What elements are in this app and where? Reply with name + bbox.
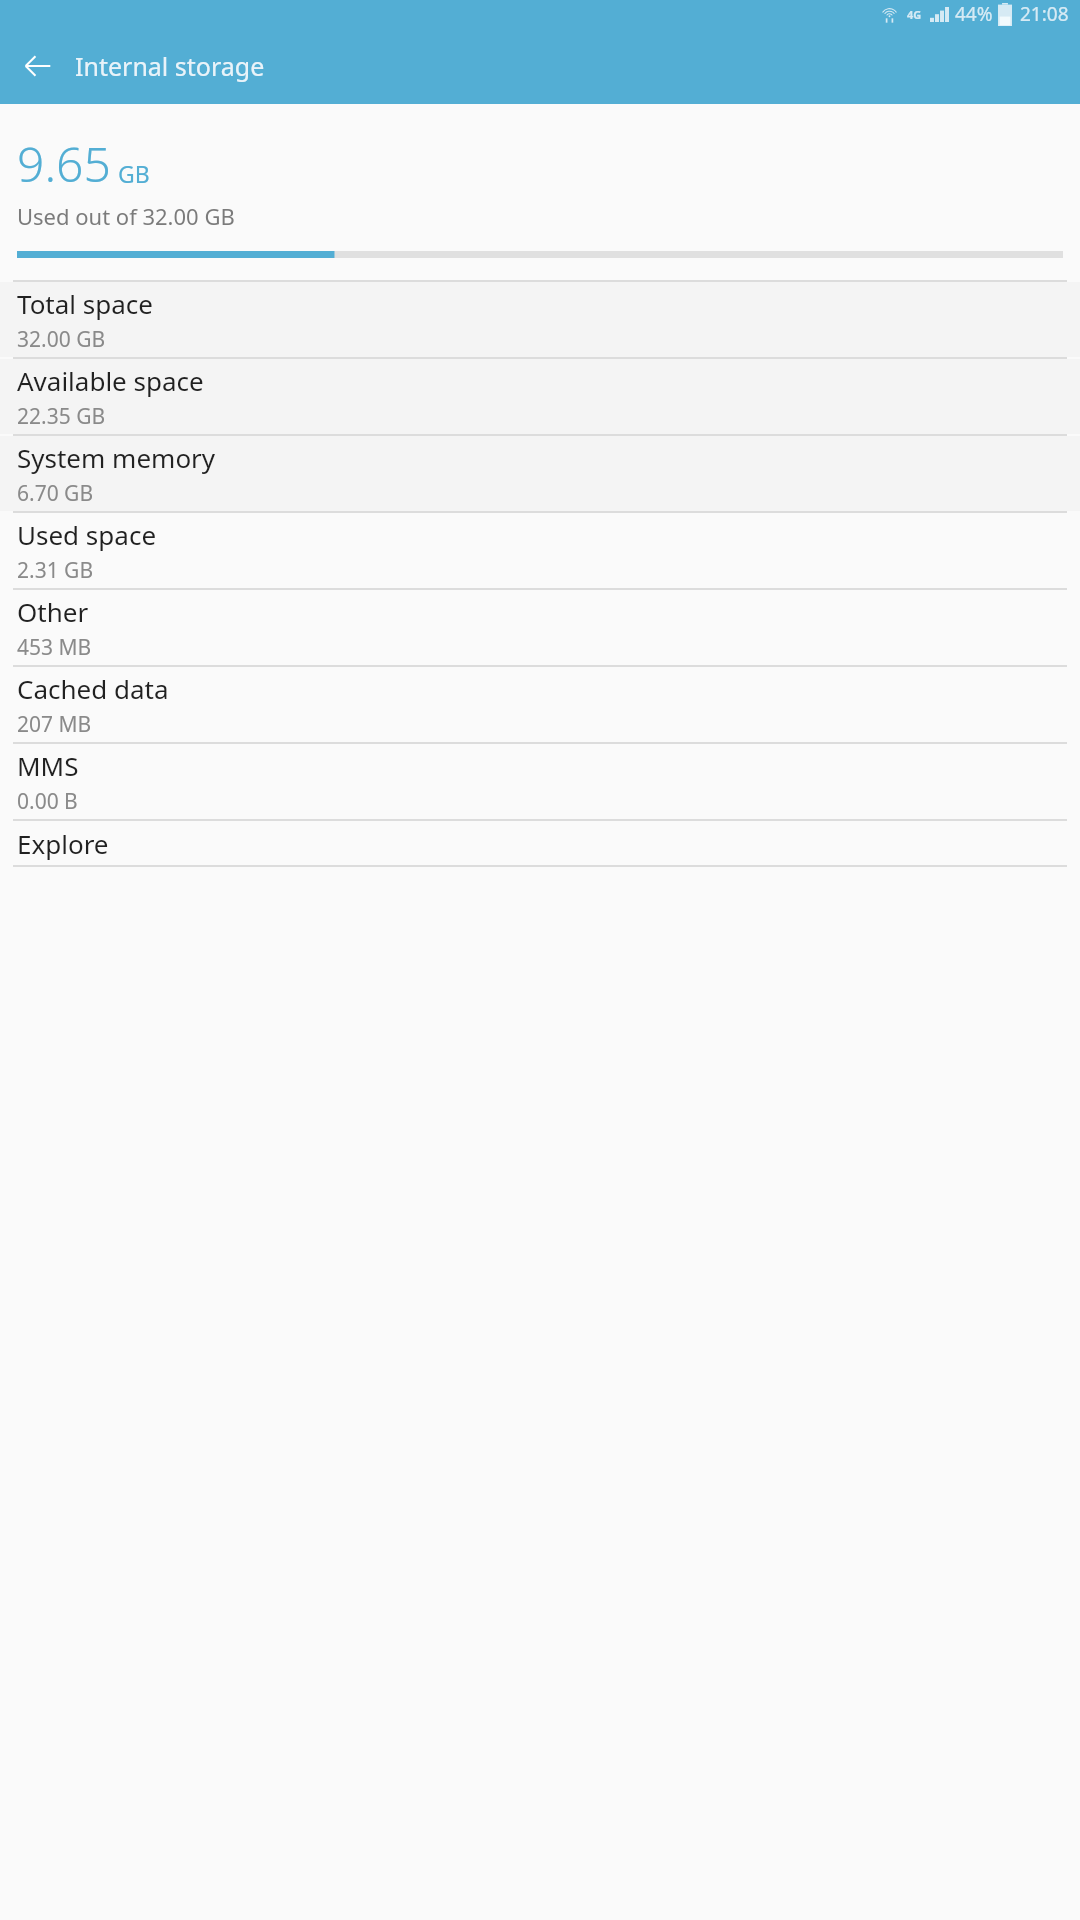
staticText: GB [118,158,150,189]
staticText: Available space [17,363,204,398]
staticText: 4G [907,7,922,22]
staticText: 2.31 GB [17,556,94,585]
staticText: 22.35 GB [17,402,106,431]
staticText: System memory [17,440,216,475]
staticText: 9.65 [17,131,111,196]
staticText: Total space [17,286,153,321]
button[interactable]: System memory [0,436,1080,511]
staticText: 21:08 [1020,1,1069,27]
staticText: 32.00 GB [17,325,106,354]
button[interactable]: Other [0,590,1080,665]
button[interactable]: Cached data [0,667,1080,742]
staticText: Other [17,594,89,629]
staticText: 44% [955,1,993,27]
button[interactable]: MMS [0,744,1080,819]
button[interactable]: Available space [0,359,1080,434]
staticText: 207 MB [17,710,92,739]
button[interactable]: Explore [0,821,1080,865]
staticText: Used out of 32.00 GB [17,201,235,231]
staticText: Used space [17,517,157,552]
button[interactable]: Used space [0,513,1080,588]
staticText: 6.70 GB [17,479,94,508]
staticText: Internal storage [75,49,265,83]
button[interactable]: Back [10,38,66,94]
staticText: Cached data [17,671,169,706]
staticText: Explore [17,826,109,861]
staticText: 453 MB [17,633,92,662]
staticText: 0.00 B [17,787,78,816]
button[interactable]: Total space [0,282,1080,357]
staticText: MMS [17,748,79,783]
